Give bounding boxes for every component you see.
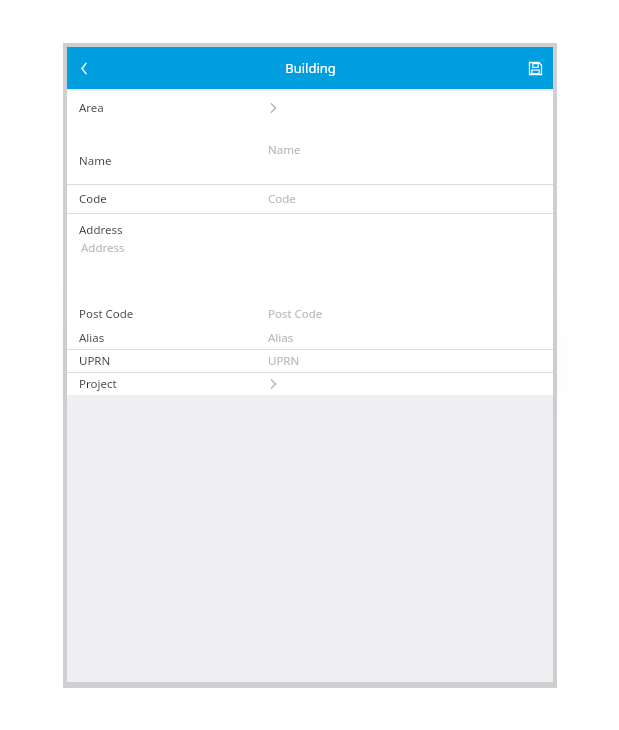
staticText: Area <box>79 100 104 116</box>
button[interactable]: Code <box>67 185 553 213</box>
button[interactable]: Back <box>67 51 101 85</box>
button[interactable]: Save <box>517 50 553 86</box>
staticText: Building <box>285 59 336 77</box>
staticText: UPRN <box>268 353 300 369</box>
button[interactable]: Project <box>67 373 553 395</box>
staticText: Code <box>268 191 296 207</box>
button[interactable]: Alias <box>67 326 553 349</box>
staticText: Address <box>81 240 125 256</box>
staticText: Name <box>79 153 112 169</box>
button[interactable]: Post Code <box>67 302 553 326</box>
button[interactable]: Address <box>67 214 553 302</box>
button[interactable]: Name <box>67 124 553 184</box>
button[interactable]: Area <box>67 91 553 124</box>
staticText: Alias <box>79 330 105 346</box>
staticText: Post Code <box>79 306 134 322</box>
staticText: Address <box>79 222 123 238</box>
staticText: Alias <box>268 330 294 346</box>
staticText: Code <box>79 191 107 207</box>
staticText: Project <box>79 376 117 392</box>
staticText: Name <box>268 142 301 158</box>
staticText: Post Code <box>268 306 323 322</box>
staticText: UPRN <box>79 353 111 369</box>
button[interactable]: UPRN <box>67 350 553 372</box>
